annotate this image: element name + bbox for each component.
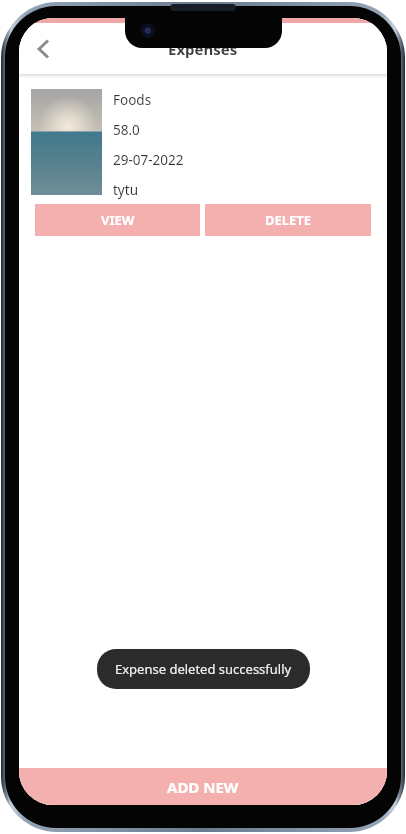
button[interactable]: Foods (19, 82, 387, 262)
button[interactable]: Back (23, 29, 63, 69)
staticText: 29-07-2022 (113, 151, 184, 169)
staticText: 58.0 (113, 121, 140, 139)
staticText: Expense deleted successfully (115, 660, 292, 678)
button[interactable]: VIEW (35, 204, 200, 236)
button[interactable]: Expense deleted successfully (97, 649, 310, 689)
staticText: ADD NEW (167, 777, 239, 797)
button[interactable]: DELETE (205, 204, 371, 236)
staticText: VIEW (101, 211, 135, 229)
staticText: DELETE (265, 211, 312, 229)
staticText: tytu (113, 181, 138, 199)
button[interactable]: ADD NEW (19, 768, 387, 805)
staticText: Expenses (168, 39, 238, 59)
staticText: Foods (113, 91, 152, 109)
